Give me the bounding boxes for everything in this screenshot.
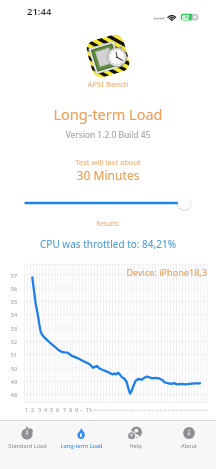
staticText: 6 xyxy=(54,406,61,413)
staticText: 50 xyxy=(0,365,17,372)
staticText: 9 xyxy=(73,406,80,413)
button[interactable]: Standard Load xyxy=(0,421,54,450)
staticText: 3 xyxy=(36,406,43,413)
staticText: Long-term Load xyxy=(0,104,216,124)
staticText: 7 xyxy=(61,406,68,413)
staticText: 2 xyxy=(29,406,36,413)
staticText: 48 xyxy=(0,391,17,398)
staticText: Results: xyxy=(0,219,216,228)
staticText: 49 xyxy=(0,378,17,385)
staticText: 57 xyxy=(0,272,17,279)
button[interactable]: Help xyxy=(108,421,162,450)
staticText: Long-term Load xyxy=(60,442,103,450)
staticText: 21:44 xyxy=(27,5,52,18)
button[interactable]: Long-term Load xyxy=(54,421,108,450)
staticText: Help xyxy=(129,442,142,450)
staticText: 30 Minutes xyxy=(0,167,216,183)
button[interactable]: About xyxy=(162,421,216,450)
staticText: Test will last about xyxy=(0,157,216,167)
staticText: 4 xyxy=(42,406,49,413)
staticText: 54 xyxy=(0,311,17,318)
staticText: Device: iPhone18,3 xyxy=(0,266,207,278)
staticText: 11 xyxy=(84,406,93,413)
staticText: 62 xyxy=(182,13,190,21)
staticText: CPU was throttled to: 84,21% xyxy=(0,237,216,251)
staticText: 51 xyxy=(0,351,17,358)
staticText: 56 xyxy=(0,285,17,292)
staticText: About xyxy=(181,442,197,450)
staticText: 53 xyxy=(0,325,17,332)
staticText: 8 xyxy=(67,406,74,413)
staticText: 5 xyxy=(48,406,55,413)
staticText: Version 1.2.0 Build 45 xyxy=(0,129,216,140)
staticText: Standard Load xyxy=(8,442,47,450)
staticText: 52 xyxy=(0,338,17,345)
staticText: 1 xyxy=(23,406,30,413)
staticText: APSI Bench xyxy=(0,79,216,89)
staticText: 55 xyxy=(0,298,17,305)
